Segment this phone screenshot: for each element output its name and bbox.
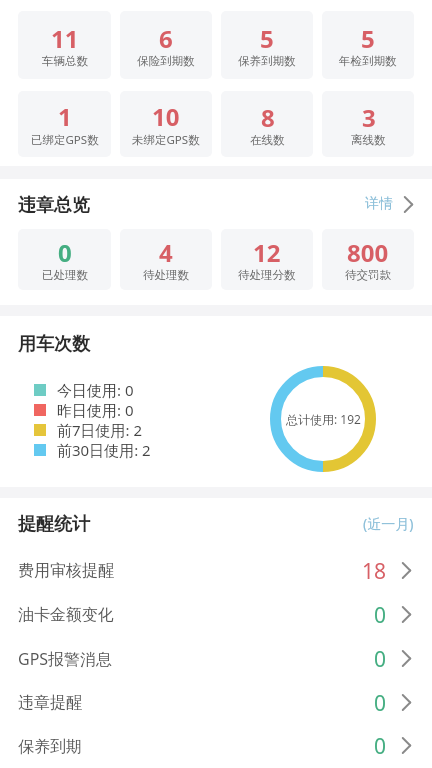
- staticText: 油卡金额变化: [18, 605, 114, 625]
- button[interactable]: 费用审核提醒: [0, 549, 432, 593]
- button[interactable]: GPS报警消息: [0, 637, 432, 681]
- staticText: 18: [362, 557, 387, 586]
- staticText: 0: [58, 236, 72, 269]
- staticText: 5: [361, 22, 375, 55]
- button[interactable]: 0: [18, 229, 111, 290]
- staticText: 未绑定GPS数: [132, 132, 200, 148]
- staticText: 违章总览: [18, 194, 90, 217]
- staticText: 昨日使用: 0: [57, 400, 134, 420]
- staticText: 总计使用: 192: [286, 411, 361, 427]
- button[interactable]: 12: [221, 229, 313, 290]
- staticText: 800: [347, 236, 389, 269]
- staticText: 详情: [365, 195, 393, 213]
- staticText: 违章提醒: [18, 693, 82, 713]
- staticText: 4: [159, 236, 173, 269]
- staticText: 0: [374, 601, 387, 630]
- staticText: 已绑定GPS数: [31, 132, 99, 148]
- staticText: 费用审核提醒: [18, 561, 114, 581]
- staticText: GPS报警消息: [18, 648, 113, 670]
- button[interactable]: 3: [322, 91, 414, 157]
- button[interactable]: 10: [120, 91, 212, 157]
- staticText: 5: [260, 22, 274, 55]
- staticText: 待处理数: [143, 268, 189, 282]
- staticText: 1: [58, 100, 72, 133]
- button[interactable]: 违章提醒: [0, 681, 432, 725]
- button[interactable]: 油卡金额变化: [0, 593, 432, 637]
- staticText: 3: [362, 101, 376, 134]
- staticText: 保养到期: [18, 737, 82, 757]
- staticText: 今日使用: 0: [57, 380, 134, 400]
- button[interactable]: 8: [221, 91, 313, 157]
- staticText: 提醒统计: [18, 513, 90, 536]
- button[interactable]: 详情: [365, 195, 414, 213]
- staticText: 用车次数: [18, 333, 90, 356]
- button[interactable]: 6: [120, 11, 212, 79]
- staticText: 0: [374, 645, 387, 674]
- staticText: 前30日使用: 2: [57, 440, 151, 460]
- staticText: 在线数: [250, 133, 285, 147]
- staticText: 8: [261, 101, 275, 134]
- staticText: 已处理数: [42, 268, 88, 282]
- staticText: (近一月): [363, 514, 414, 533]
- staticText: 年检到期数: [339, 54, 397, 68]
- staticText: 车辆总数: [42, 54, 88, 68]
- button[interactable]: 1: [18, 91, 111, 157]
- staticText: 0: [374, 732, 387, 761]
- staticText: 12: [253, 236, 281, 269]
- button[interactable]: 11: [18, 11, 111, 79]
- staticText: 10: [152, 100, 180, 133]
- staticText: 6: [159, 22, 173, 55]
- staticText: 11: [51, 22, 79, 55]
- staticText: 待处理分数: [238, 268, 296, 282]
- staticText: 0: [374, 689, 387, 718]
- button[interactable]: 5: [221, 11, 313, 79]
- staticText: 保养到期数: [238, 54, 296, 68]
- staticText: 前7日使用: 2: [57, 420, 143, 440]
- button[interactable]: 保养到期: [0, 725, 432, 768]
- button[interactable]: 5: [322, 11, 414, 79]
- button[interactable]: 800: [322, 229, 414, 290]
- staticText: 保险到期数: [137, 54, 195, 68]
- staticText: 离线数: [351, 133, 386, 147]
- staticText: 待交罚款: [345, 268, 391, 282]
- button[interactable]: 4: [120, 229, 212, 290]
